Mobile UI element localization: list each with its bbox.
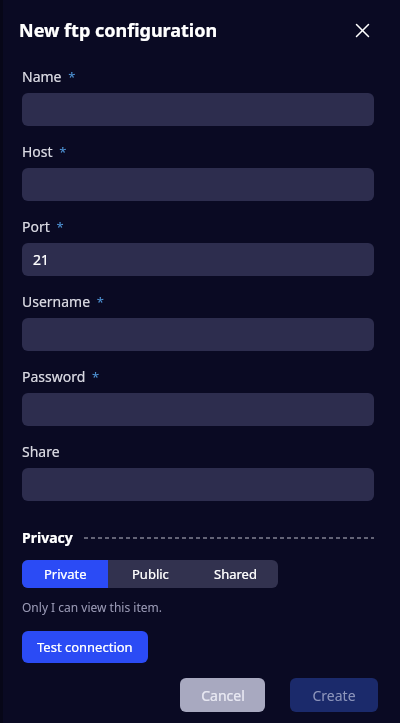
button[interactable]: Private (22, 560, 108, 588)
staticText: Share (22, 442, 60, 461)
button[interactable]: Shared (193, 560, 278, 588)
staticText: Public (132, 565, 169, 583)
staticText: 21 (33, 250, 50, 269)
staticText: Password * (22, 367, 100, 386)
button[interactable]: Test connection (22, 631, 148, 663)
button[interactable]: Cancel (180, 678, 265, 712)
staticText: Username * (22, 292, 105, 311)
staticText: Port * (22, 217, 64, 236)
staticText: Name * (22, 67, 76, 86)
staticText: Private (44, 565, 87, 583)
staticText: Cancel (201, 686, 245, 705)
staticText: New ftp configuration (19, 18, 218, 43)
staticText: Shared (214, 565, 257, 583)
staticText: Test connection (37, 638, 133, 656)
staticText: Only I can view this item. (22, 599, 162, 615)
staticText: Privacy (22, 528, 73, 547)
button[interactable]: Create (290, 678, 378, 712)
staticText: Host * (22, 142, 67, 161)
staticText: Create (312, 686, 356, 705)
button[interactable]: Close (346, 14, 378, 46)
button[interactable]: Public (108, 560, 193, 588)
button[interactable]: 21 (22, 243, 374, 276)
